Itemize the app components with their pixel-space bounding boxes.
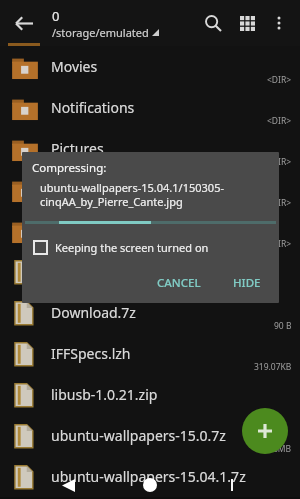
button[interactable]: libusb-1.0.21.zip: [0, 374, 300, 415]
button[interactable]: Back: [6, 5, 42, 41]
button[interactable]: More options: [264, 8, 294, 38]
button[interactable]: Add: [242, 408, 288, 454]
button[interactable]: Movies: [0, 46, 300, 87]
button[interactable]: Recents: [218, 471, 246, 499]
button[interactable]: CANCEL: [147, 269, 211, 297]
button[interactable]: Home: [136, 471, 164, 499]
staticText: Movies: [51, 57, 300, 76]
button[interactable]: Download.7z: [0, 292, 300, 333]
button[interactable]: Ringtones: [0, 210, 300, 251]
button[interactable]: Podcasts: [0, 169, 300, 210]
staticText: archive.tar: [51, 262, 300, 281]
staticText: Podcasts: [51, 180, 300, 199]
staticText: Download.7z: [51, 303, 300, 322]
staticText: Ringtones: [51, 221, 300, 240]
staticText: 319.07KB: [254, 361, 292, 373]
button[interactable]: HIDE: [223, 269, 271, 297]
button[interactable]: Pictures: [0, 128, 300, 169]
button[interactable]: ubuntu-wallpapers-15.0.7z: [0, 415, 300, 456]
staticText: IFFSpecs.lzh: [51, 344, 300, 363]
button[interactable]: Back: [54, 471, 82, 499]
staticText: 0: [52, 7, 60, 25]
staticText: ubuntu-wallpapers-15.04.1/150305-cinqAA_…: [40, 180, 271, 209]
button[interactable]: Keeping the screen turned on: [34, 240, 279, 255]
staticText: CANCEL: [157, 275, 201, 291]
staticText: HIDE: [233, 275, 261, 291]
staticText: <DIR>: [267, 238, 292, 250]
staticText: ubuntu-wallpapers-15.04.1.7z: [51, 467, 300, 486]
staticText: <DIR>: [267, 156, 292, 168]
staticText: 2.36MB: [261, 443, 292, 455]
staticText: <DIR>: [267, 115, 292, 127]
button[interactable]: Grid view: [230, 6, 264, 40]
button[interactable]: Search: [196, 6, 230, 40]
staticText: 90 B: [274, 320, 292, 332]
staticText: ubuntu-wallpapers-15.0.7z: [51, 426, 300, 445]
staticText: /storage/emulated: [52, 25, 149, 40]
staticText: <DIR>: [267, 197, 292, 209]
staticText: Notifications: [51, 98, 300, 117]
staticText: Pictures: [51, 139, 300, 158]
staticText: <DIR>: [267, 74, 292, 86]
staticText: libusb-1.0.21.zip: [51, 385, 300, 404]
button[interactable]: Notifications: [0, 87, 300, 128]
staticText: Keeping the screen turned on: [55, 240, 209, 255]
staticText: Compressing:: [32, 160, 107, 176]
button[interactable]: archive.tar: [0, 251, 300, 292]
button[interactable]: IFFSpecs.lzh: [0, 333, 300, 374]
button[interactable]: ubuntu-wallpapers-15.04.1.7z: [0, 456, 300, 497]
